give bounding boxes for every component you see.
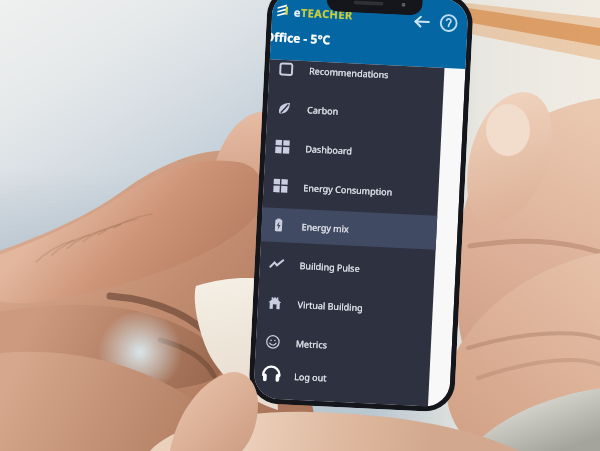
staticText: Virtual Building xyxy=(297,298,363,313)
staticText: e xyxy=(294,4,301,20)
staticText: Energy Consumption xyxy=(303,181,393,197)
button[interactable]: Energy Consumption xyxy=(263,165,439,213)
button[interactable]: Energy mix xyxy=(261,204,437,252)
button[interactable]: Building Pulse xyxy=(259,243,435,291)
button[interactable]: Carbon xyxy=(266,87,443,135)
button[interactable]: Log out xyxy=(254,360,430,395)
staticText: Dashboard xyxy=(305,142,353,156)
button[interactable]: Metrics xyxy=(255,321,432,369)
button[interactable]: Dashboard xyxy=(264,126,441,174)
staticText: Office - 5°C xyxy=(270,28,331,47)
staticText: TEACHER xyxy=(301,5,353,22)
button[interactable]: Help xyxy=(437,11,460,34)
staticText: Recommendations xyxy=(309,64,389,80)
staticText: Building Pulse xyxy=(299,259,361,274)
staticText: Metrics xyxy=(296,337,328,350)
button[interactable]: Back xyxy=(410,10,433,33)
staticText: Log out xyxy=(294,370,327,384)
staticText: Carbon xyxy=(307,103,338,117)
button[interactable]: Virtual Building xyxy=(257,282,434,330)
button[interactable]: Recommendations xyxy=(268,48,445,96)
staticText: Energy mix xyxy=(301,220,350,234)
